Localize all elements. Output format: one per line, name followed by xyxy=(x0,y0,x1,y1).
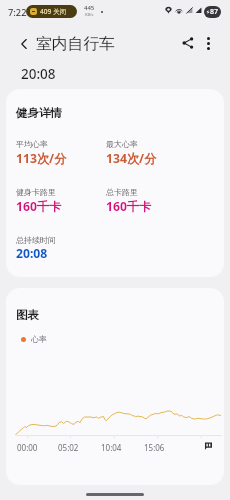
staticText: 05:02 xyxy=(58,442,79,453)
staticText: 409 关闭 xyxy=(40,7,67,16)
staticText: 心率 xyxy=(31,334,47,344)
button[interactable]: Back xyxy=(11,31,37,57)
staticText: 7:22 xyxy=(8,6,27,19)
button[interactable]: 健身详情 xyxy=(6,89,224,277)
button[interactable]: Expand chart xyxy=(200,438,216,454)
staticText: 最大心率 xyxy=(106,139,138,149)
staticText: 15:06 xyxy=(144,442,165,453)
button[interactable]: Share xyxy=(176,31,200,55)
staticText: 134次/分 xyxy=(106,150,157,167)
staticText: KB/s xyxy=(85,12,94,17)
staticText: 113次/分 xyxy=(16,150,67,167)
button[interactable]: 心率 xyxy=(21,334,47,344)
staticText: 160千卡 xyxy=(106,198,152,215)
staticText: 健身详情 xyxy=(16,106,62,120)
staticText: 87 xyxy=(210,7,219,17)
staticText: 160千卡 xyxy=(16,198,62,215)
staticText: 健身卡路里 xyxy=(16,187,56,197)
button[interactable]: More options xyxy=(196,31,220,55)
staticText: 总卡路里 xyxy=(106,187,138,197)
staticText: 20:08 xyxy=(21,65,56,83)
staticText: 平均心率 xyxy=(16,139,48,149)
staticText: 10:04 xyxy=(101,442,122,453)
staticText: 20:08 xyxy=(16,245,48,262)
staticText: 445 xyxy=(84,4,95,12)
staticText: 室内自行车 xyxy=(36,34,115,54)
staticText: 总持续时间 xyxy=(16,235,56,245)
staticText: 00:00 xyxy=(17,442,38,453)
staticText: 图表 xyxy=(16,308,39,322)
